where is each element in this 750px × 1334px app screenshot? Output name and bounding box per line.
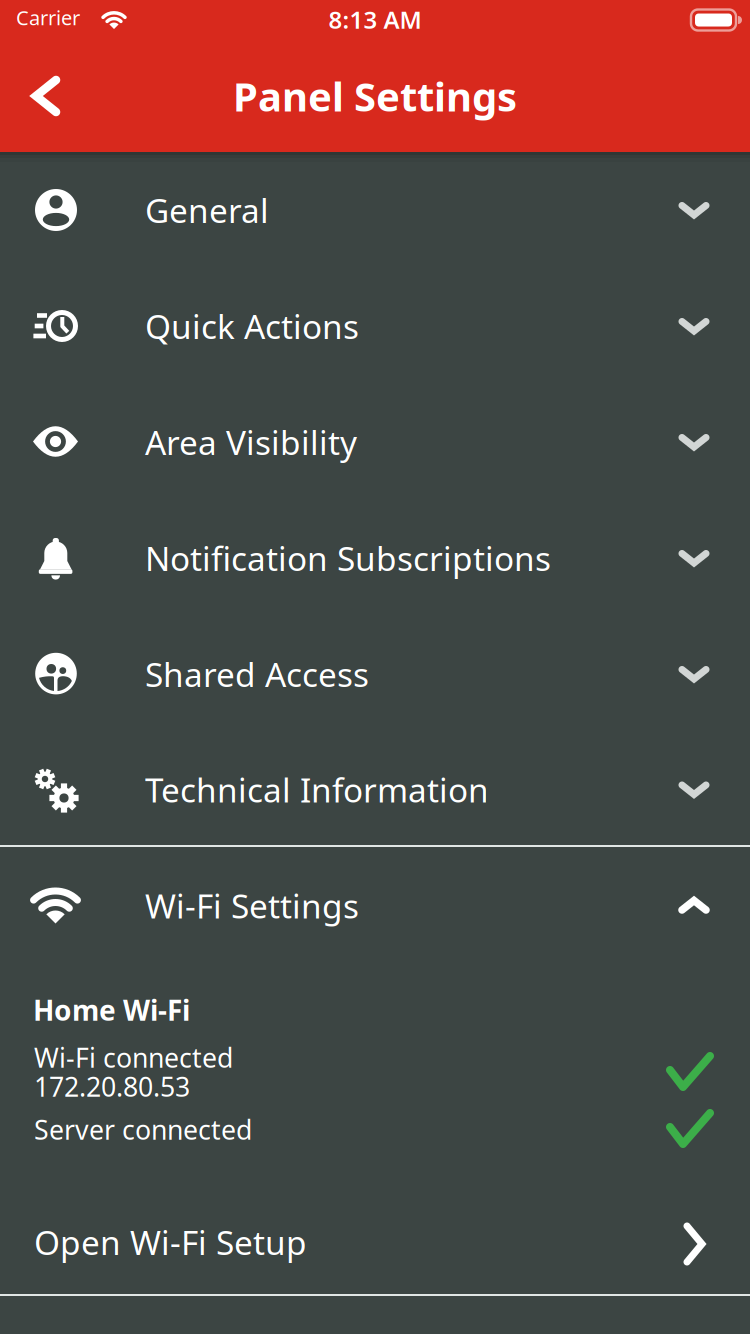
- button[interactable]: Technical Information: [0, 732, 750, 847]
- staticText: 172.20.80.53: [34, 1069, 190, 1104]
- staticText: Notification Subscriptions: [145, 536, 551, 580]
- staticText: Wi-Fi connected: [34, 1040, 233, 1075]
- button[interactable]: General: [0, 152, 750, 268]
- staticText: 8:13 AM: [328, 4, 421, 35]
- staticText: Open Wi-Fi Setup: [34, 1220, 307, 1264]
- staticText: Quick Actions: [145, 304, 359, 348]
- staticText: Technical Information: [145, 767, 489, 812]
- staticText: Wi-Fi Settings: [145, 883, 359, 928]
- button[interactable]: Area Visibility: [0, 384, 750, 500]
- staticText: General: [145, 188, 269, 232]
- button[interactable]: Notification Subscriptions: [0, 500, 750, 616]
- staticText: Area Visibility: [145, 420, 357, 464]
- button[interactable]: Shared Access: [0, 616, 750, 732]
- button[interactable]: Quick Actions: [0, 268, 750, 384]
- button[interactable]: Wi-Fi Settings: [0, 847, 750, 964]
- staticText: Server connected: [34, 1112, 252, 1147]
- staticText: Carrier: [16, 4, 80, 31]
- button[interactable]: Open Wi-Fi Setup: [0, 1194, 750, 1290]
- button[interactable]: Back: [6, 52, 86, 140]
- staticText: Home Wi-Fi: [33, 991, 190, 1029]
- staticText: Shared Access: [145, 652, 369, 696]
- staticText: Panel Settings: [233, 69, 517, 122]
